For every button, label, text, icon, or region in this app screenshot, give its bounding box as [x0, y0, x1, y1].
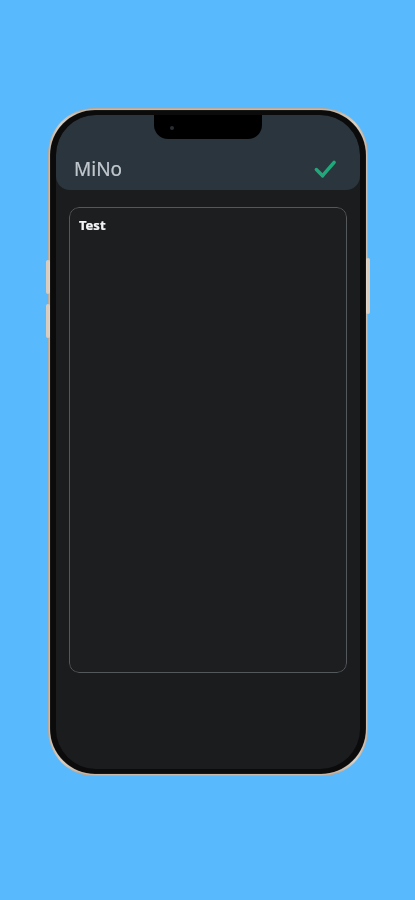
staticText: MiNo: [74, 156, 123, 182]
staticText: Test: [79, 216, 106, 234]
button[interactable]: Test: [69, 207, 347, 673]
button[interactable]: Confirm: [306, 150, 344, 188]
